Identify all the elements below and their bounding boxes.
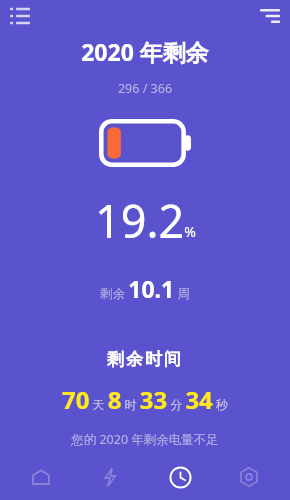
button[interactable]: Power xyxy=(82,454,138,500)
button[interactable]: Settings xyxy=(221,454,277,500)
staticText: 19.2% xyxy=(95,190,196,251)
button[interactable]: Clock xyxy=(152,454,208,500)
staticText: 2020 年剩余 xyxy=(0,36,290,67)
button[interactable]: Home xyxy=(13,454,69,500)
staticText: 剩余时间 xyxy=(0,349,290,370)
staticText: 剩余 10.1 周 xyxy=(100,273,190,304)
staticText: 您的 2020 年剩余电量不足 xyxy=(0,431,290,448)
button[interactable]: Filter xyxy=(256,2,284,30)
button[interactable]: List xyxy=(6,2,34,30)
staticText: 70 天 8 时 33 分 34 秒 xyxy=(62,383,228,416)
staticText: 296 / 366 xyxy=(0,80,290,97)
